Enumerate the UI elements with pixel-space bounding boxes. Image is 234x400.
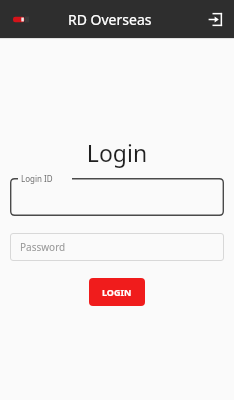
other: App logo <box>13 15 29 24</box>
button[interactable]: Login ID <box>10 178 224 216</box>
button[interactable]: Password <box>10 233 224 261</box>
staticText: LOGIN <box>102 286 132 298</box>
button[interactable]: LOGIN <box>89 278 145 306</box>
staticText: Login <box>0 137 234 168</box>
button[interactable]: Logout <box>204 8 226 30</box>
staticText: RD Overseas <box>68 10 152 29</box>
staticText: Password <box>20 240 66 254</box>
staticText: Login ID <box>21 173 53 184</box>
